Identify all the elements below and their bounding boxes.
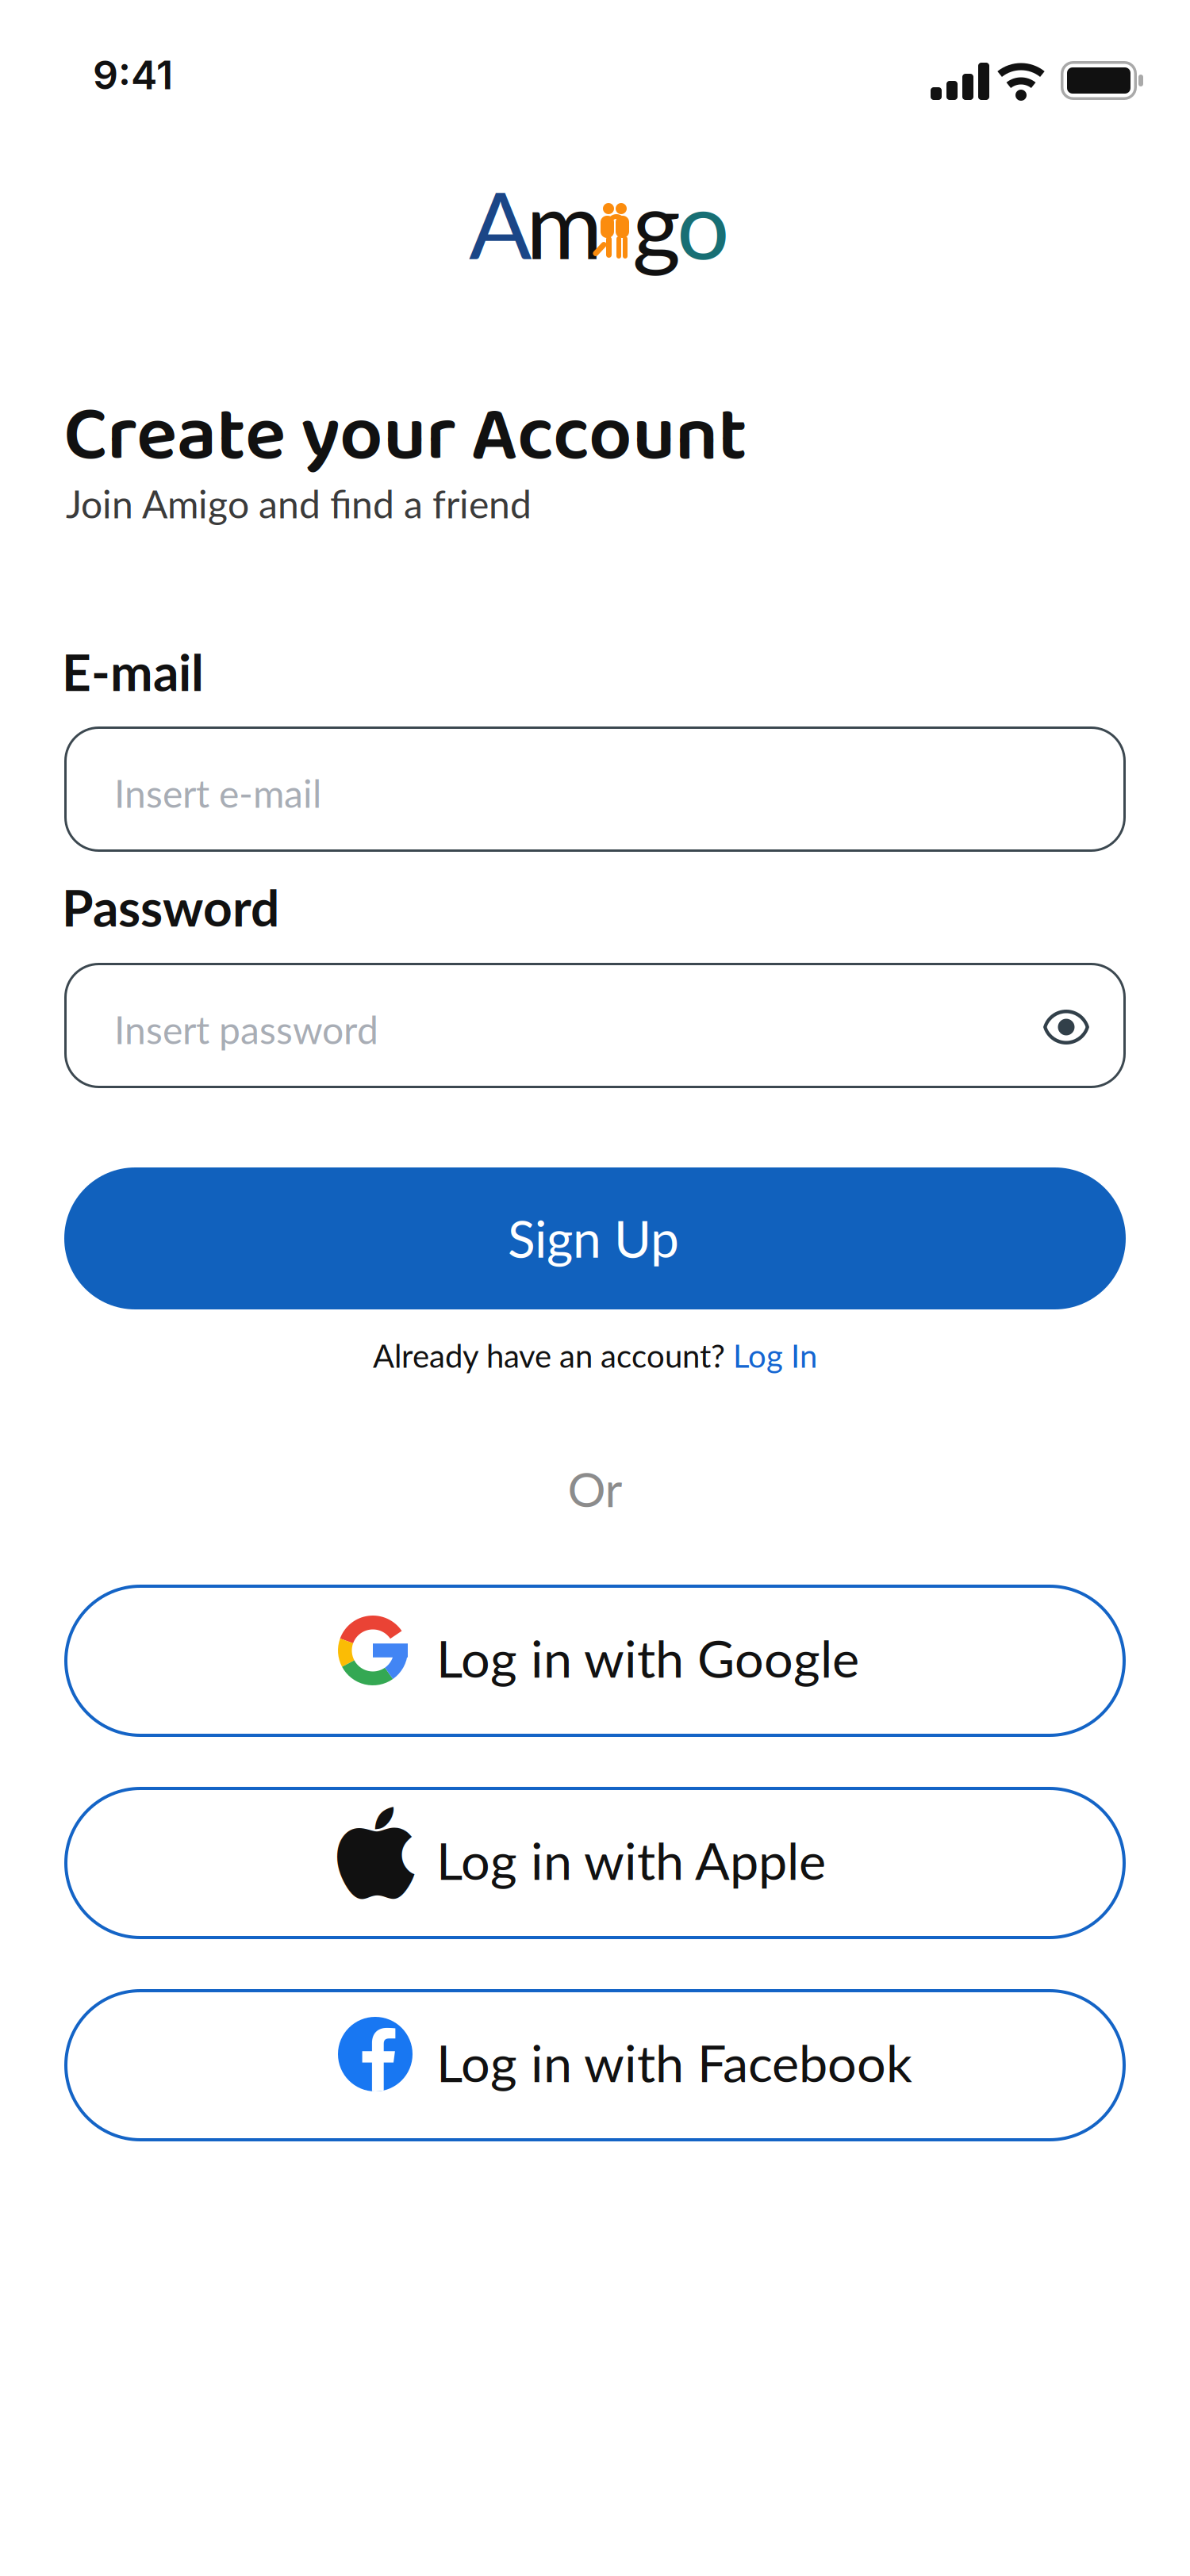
staticText: E-mail bbox=[62, 641, 204, 702]
staticText: Create your Account bbox=[63, 376, 747, 498]
button[interactable]: Log In bbox=[733, 1336, 817, 1374]
button[interactable]: Show password bbox=[1043, 1010, 1089, 1045]
staticText: Already have an account? bbox=[373, 1336, 725, 1374]
button[interactable]:  bbox=[64, 1989, 1126, 2141]
staticText: Log in with Facebook bbox=[436, 2032, 912, 2093]
staticText:  bbox=[359, 2028, 398, 2097]
staticText: A bbox=[469, 167, 532, 279]
staticText: Or bbox=[568, 1460, 622, 1517]
staticText: m bbox=[526, 167, 603, 279]
staticText: 9:41 bbox=[93, 51, 173, 99]
staticText: Insert password bbox=[114, 1006, 378, 1052]
staticText: Join Amigo and find a friend bbox=[66, 481, 532, 526]
staticText: Sign Up bbox=[508, 1207, 679, 1268]
staticText:  bbox=[337, 1807, 415, 1906]
staticText: Log In bbox=[733, 1336, 817, 1374]
staticText: Log in with Google bbox=[436, 1627, 859, 1689]
button[interactable]:  bbox=[64, 1787, 1126, 1939]
staticText: g bbox=[632, 167, 681, 279]
staticText: Log in with Apple bbox=[436, 1829, 826, 1891]
staticText: Password bbox=[62, 876, 279, 937]
staticText: o bbox=[677, 167, 730, 279]
button[interactable]: Log in with Google bbox=[64, 1585, 1126, 1737]
button[interactable]: Sign Up bbox=[64, 1167, 1126, 1309]
staticText: Insert e-mail bbox=[114, 770, 321, 816]
